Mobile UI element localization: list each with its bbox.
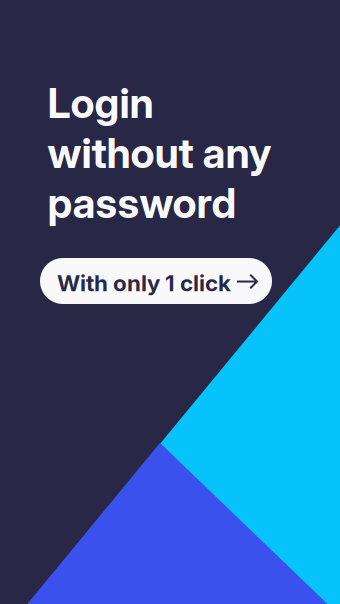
staticText: With only 1 click — [57, 269, 231, 297]
staticText: Login without any password — [47, 78, 271, 228]
button[interactable]: With only 1 click — [40, 258, 272, 304]
